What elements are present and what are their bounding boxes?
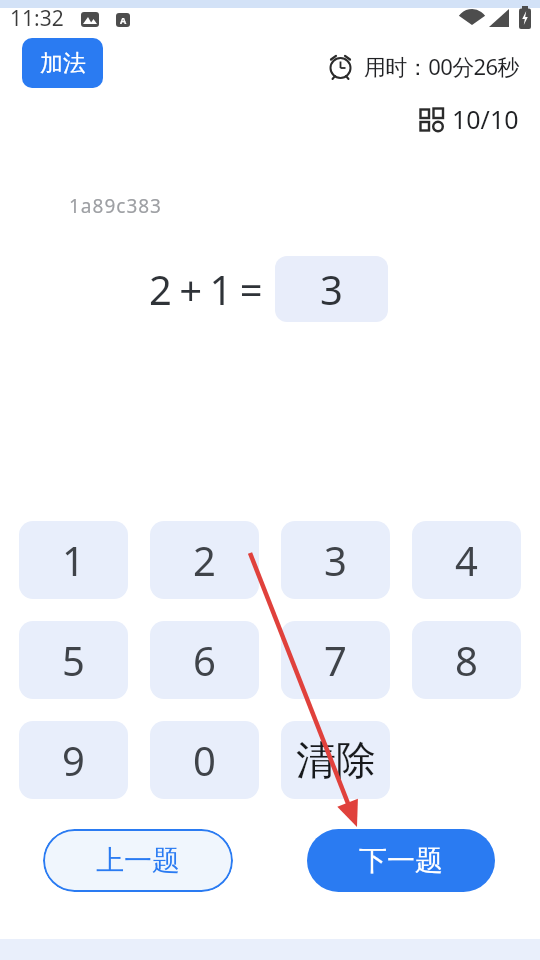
button[interactable]: 0 (150, 721, 259, 799)
staticText: 11:32 (10, 4, 64, 33)
staticText: 用时：00分26秒 (364, 51, 519, 81)
staticText: 下一题 (359, 843, 443, 878)
staticText: 5 (62, 633, 85, 687)
button[interactable]: 下一题 (307, 829, 495, 892)
button[interactable]: 4 (412, 521, 521, 599)
button[interactable]: 1 (19, 521, 128, 599)
button[interactable]: 6 (150, 621, 259, 699)
staticText: 3 (320, 262, 343, 316)
staticText: 1 (62, 533, 85, 587)
button[interactable]: 加法 (22, 38, 103, 88)
button[interactable]: 7 (281, 621, 390, 699)
button[interactable]: 9 (19, 721, 128, 799)
button[interactable]: 5 (19, 621, 128, 699)
staticText: 清除 (296, 735, 376, 785)
staticText: 9 (62, 733, 85, 787)
staticText: 2 (193, 533, 216, 587)
button[interactable]: 清除 (281, 721, 390, 799)
staticText: 3 (324, 533, 347, 587)
staticText: 2 + 1 = (149, 262, 262, 316)
staticText: 8 (455, 633, 478, 687)
staticText: 0 (193, 733, 216, 787)
staticText: A (120, 14, 127, 26)
button[interactable]: 2 (150, 521, 259, 599)
staticText: 加法 (40, 49, 86, 78)
staticText: 10/10 (452, 102, 519, 136)
button[interactable]: 上一题 (43, 829, 233, 892)
staticText: 7 (324, 633, 347, 687)
staticText: 1a89c383 (69, 193, 162, 219)
staticText: 4 (455, 533, 478, 587)
staticText: 上一题 (96, 843, 180, 878)
button[interactable]: 3 (281, 521, 390, 599)
staticText: 6 (193, 633, 216, 687)
button[interactable]: 8 (412, 621, 521, 699)
